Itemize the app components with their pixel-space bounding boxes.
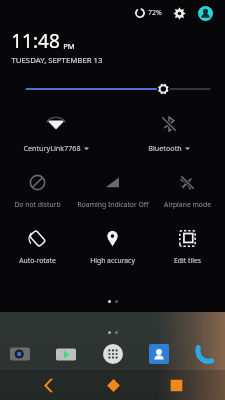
button[interactable]: Auto-rotate [0, 230, 75, 274]
button[interactable]: Phone [192, 341, 218, 367]
button[interactable]: Do not disturb [0, 174, 75, 218]
button[interactable]: Roaming Indicator Off [75, 174, 150, 218]
staticText: Edit tiles [174, 256, 201, 265]
button[interactable]: Settings [171, 5, 188, 22]
button[interactable]: Recents [162, 371, 190, 399]
staticText: 11:48 [11, 28, 60, 54]
button[interactable]: 11:48 [11, 28, 225, 66]
button[interactable]: Back [35, 371, 63, 399]
button[interactable]: Camera [7, 341, 33, 367]
button[interactable]: Play Store [53, 341, 79, 367]
staticText: Airplane mode [164, 200, 211, 209]
button[interactable]: High accuracy [75, 230, 150, 274]
button[interactable]: Airplane mode [150, 174, 225, 218]
staticText: 72% [148, 8, 162, 18]
button[interactable]: User profile [196, 4, 214, 22]
button[interactable]: Home [99, 371, 127, 399]
button[interactable]: All apps [100, 341, 126, 367]
staticText: Do not disturb [14, 200, 61, 209]
staticText: CenturyLink7768 [23, 143, 81, 153]
staticText: Auto-rotate [19, 256, 56, 265]
button[interactable]: Wi-Fi [0, 114, 112, 160]
button[interactable]: Bluetooth [112, 114, 225, 160]
staticText: Roaming Indicator Off [77, 200, 149, 209]
staticText: TUESDAY, SEPTEMBER 13 [11, 55, 103, 66]
staticText: Bluetooth [148, 143, 182, 153]
staticText: PM [63, 41, 75, 51]
button[interactable]: Edit tiles [150, 230, 225, 274]
button[interactable]: Contacts [146, 341, 172, 367]
button[interactable]: Brightness [0, 79, 225, 99]
staticText: High accuracy [90, 256, 135, 265]
